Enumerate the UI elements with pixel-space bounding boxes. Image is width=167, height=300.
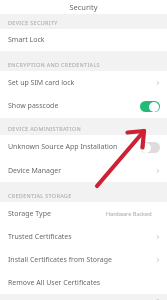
button[interactable]: Device Manager: [0, 159, 167, 182]
button[interactable]: Trusted Certificates: [0, 225, 167, 248]
staticText: Device Manager: [8, 166, 154, 176]
staticText: Security: [69, 2, 98, 12]
staticText: DEVICE ADMINISTRATION: [8, 125, 81, 132]
button[interactable]: Remove All User Certificates: [0, 271, 167, 294]
staticText: Trusted Certificates: [8, 232, 154, 242]
staticText: CREDENTIAL STORAGE: [8, 192, 72, 199]
staticText: Storage Type: [8, 209, 106, 219]
staticText: Show passcode: [8, 101, 140, 111]
button[interactable]: Install Certificates from Storage: [0, 248, 167, 271]
staticText: DEVICE SECURITY: [8, 19, 58, 26]
button[interactable]: Set up SIM card lock: [0, 71, 167, 94]
button[interactable]: Storage Type: [0, 202, 167, 225]
staticText: Hardware Backed: [106, 210, 152, 217]
button[interactable]: Smart Lock: [0, 29, 167, 51]
staticText: Unknown Source App Installation: [8, 142, 140, 152]
staticText: Remove All User Certificates: [8, 278, 154, 288]
staticText: ENCRYPTION AND CREDENTIALS: [8, 61, 100, 68]
staticText: Set up SIM card lock: [8, 78, 154, 88]
button[interactable]: Unknown Source App Installation: [0, 135, 167, 159]
staticText: Install Certificates from Storage: [8, 255, 154, 265]
button[interactable]: Show passcode: [0, 94, 167, 118]
button[interactable]: Show passcode: [140, 101, 160, 112]
button[interactable]: Unknown Source App Installation: [140, 142, 160, 153]
staticText: Smart Lock: [8, 35, 154, 45]
